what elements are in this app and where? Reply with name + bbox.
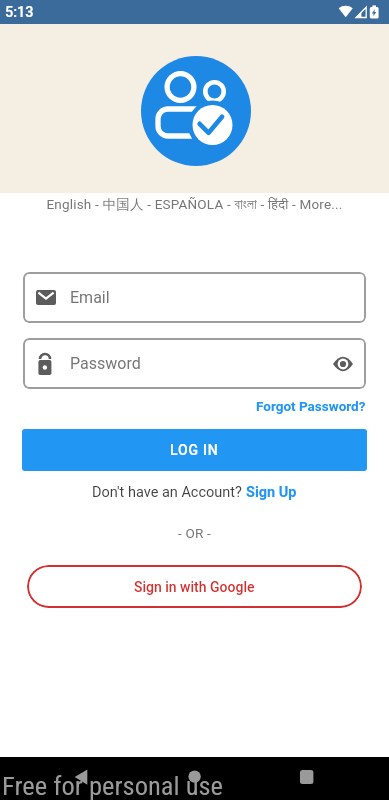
staticText: Email bbox=[70, 288, 110, 307]
staticText: - OR - bbox=[0, 525, 389, 541]
staticText: 5:13 bbox=[5, 4, 34, 21]
button[interactable] bbox=[71, 762, 91, 786]
button[interactable]: Password bbox=[23, 338, 366, 389]
button[interactable]: English - 中国人 - ESPAÑOLA - বাংলা - हिंदी… bbox=[0, 196, 389, 213]
staticText: LOG IN bbox=[170, 442, 219, 458]
button[interactable]: Forgot Password? bbox=[256, 398, 366, 414]
staticText: Sign in with Google bbox=[134, 579, 255, 595]
staticText: Don't have an Account? bbox=[92, 484, 246, 501]
button[interactable]: LOG IN bbox=[22, 429, 367, 471]
button[interactable]: Sign Up bbox=[246, 484, 297, 501]
button[interactable]: Sign in with Google bbox=[27, 565, 362, 608]
button[interactable] bbox=[296, 765, 316, 785]
button[interactable] bbox=[333, 356, 353, 372]
button[interactable] bbox=[185, 765, 205, 785]
staticText: Password bbox=[70, 354, 141, 373]
button[interactable]: Email bbox=[23, 272, 366, 323]
staticText: Free for personal use bbox=[2, 770, 223, 800]
